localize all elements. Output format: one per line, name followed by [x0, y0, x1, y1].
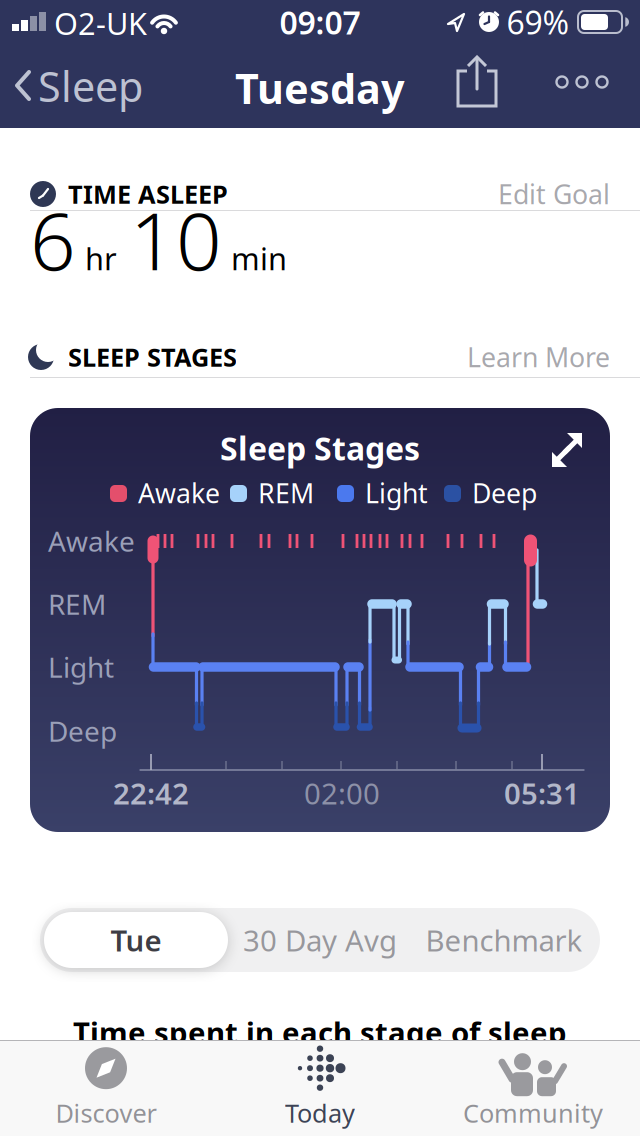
button[interactable]: 30 Day Avg [228, 912, 412, 968]
staticText: Awake [48, 522, 135, 560]
staticText: Tuesday [235, 61, 405, 115]
staticText: Today [285, 1096, 355, 1130]
staticText: TIME ASLEEP [68, 177, 228, 211]
staticText: REM [48, 585, 106, 623]
staticText: 30 Day Avg [243, 920, 397, 959]
staticText: SLEEP STAGES [68, 340, 237, 374]
button[interactable]: Today [230, 1042, 410, 1134]
button[interactable]: Community [443, 1042, 623, 1134]
staticText: Time spent in each stage of sleep [73, 1012, 567, 1051]
button[interactable]: Sleep [16, 59, 156, 113]
staticText: 05:31 [504, 773, 580, 812]
staticText: 02:00 [304, 773, 380, 812]
staticText: Deep [48, 712, 117, 750]
button[interactable] [454, 54, 502, 112]
staticText: Light [365, 475, 428, 511]
staticText: Awake [138, 475, 220, 511]
staticText: 10 [130, 186, 222, 292]
button[interactable]: Discover [16, 1042, 196, 1134]
staticText: min [231, 238, 287, 279]
staticText: 69% [506, 1, 569, 43]
staticText: Community [463, 1096, 603, 1130]
staticText: Deep [472, 475, 537, 511]
staticText: 09:07 [279, 1, 360, 43]
staticText: Tue [110, 920, 161, 959]
staticText: REM [258, 475, 314, 511]
button[interactable]: Edit Goal [440, 180, 610, 208]
staticText: 22:42 [113, 773, 189, 812]
staticText: Learn More [467, 339, 610, 375]
staticText: Sleep Stages [220, 427, 420, 469]
button[interactable]: Tue [44, 912, 228, 968]
staticText: hr [85, 238, 117, 279]
staticText: Discover [55, 1096, 156, 1130]
button[interactable]: Learn More [420, 343, 610, 371]
staticText: Benchmark [425, 920, 582, 959]
staticText: Sleep [38, 59, 143, 113]
button[interactable] [550, 62, 614, 102]
button[interactable]: Benchmark [412, 912, 596, 968]
staticText: Edit Goal [498, 176, 610, 212]
staticText: 6 [30, 186, 76, 292]
staticText: Light [48, 648, 114, 686]
staticText: O2-UK [54, 3, 147, 43]
button[interactable]: Sleep Stages [30, 408, 610, 832]
